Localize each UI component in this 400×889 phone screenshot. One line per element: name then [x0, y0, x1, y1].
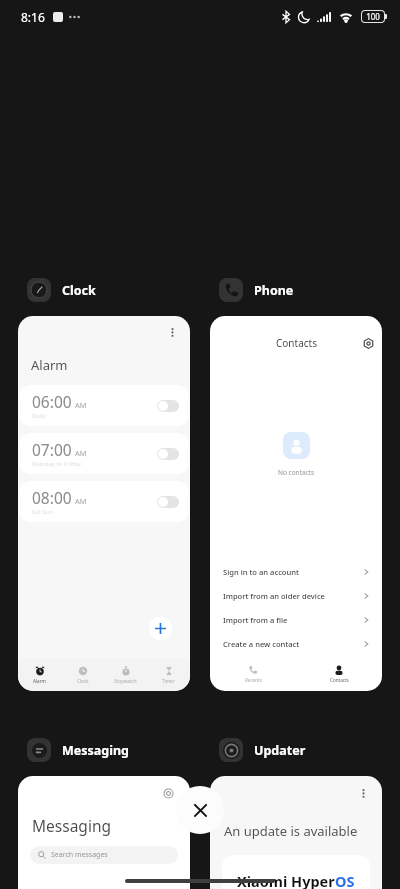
- button[interactable]: Messaging: [27, 738, 129, 762]
- staticText: Create a new contact: [223, 639, 362, 649]
- staticText: Import from a file: [223, 615, 362, 625]
- staticText: AM: [75, 400, 87, 410]
- button[interactable]: An update is available: [210, 776, 382, 889]
- button[interactable]: Toggle alarm: [157, 448, 179, 460]
- staticText: Daily: [32, 412, 46, 420]
- button[interactable]: Alarm: [18, 659, 61, 691]
- button[interactable]: Import from an older device: [210, 584, 382, 608]
- staticText: Messaging: [32, 815, 111, 836]
- staticText: Stopwatch: [114, 678, 137, 684]
- button[interactable]: Updater: [219, 738, 306, 762]
- staticText: Contacts: [330, 677, 349, 683]
- staticText: No contacts: [278, 468, 315, 477]
- staticText: AM: [75, 448, 87, 458]
- button[interactable]: Recents: [210, 657, 296, 691]
- button[interactable]: Messaging: [18, 776, 190, 889]
- staticText: OS: [335, 871, 355, 889]
- button[interactable]: Close all apps: [176, 786, 224, 834]
- staticText: 8:16: [21, 9, 45, 25]
- staticText: Timer: [162, 678, 175, 684]
- button[interactable]: Toggle alarm: [157, 496, 179, 508]
- staticText: Sat Sun: [32, 508, 54, 516]
- staticText: AM: [75, 496, 87, 506]
- button[interactable]: Toggle alarm: [157, 400, 179, 412]
- button[interactable]: Stopwatch: [104, 659, 147, 691]
- staticText: Monday to Friday: [32, 460, 82, 468]
- staticText: Contacts: [276, 336, 317, 350]
- button[interactable]: Contacts: [210, 316, 382, 691]
- button[interactable]: Add alarm: [149, 617, 172, 640]
- staticText: Clock: [77, 678, 89, 684]
- staticText: Phone: [254, 282, 294, 299]
- button[interactable]: 08:00: [19, 481, 189, 522]
- staticText: 100: [366, 11, 380, 22]
- staticText: 06:00: [32, 391, 72, 412]
- staticText: 08:00: [32, 487, 72, 508]
- staticText: Messaging: [62, 742, 129, 759]
- button[interactable]: Settings: [359, 334, 377, 352]
- staticText: Updater: [254, 742, 306, 759]
- button[interactable]: Clock: [27, 278, 96, 302]
- staticText: 07:00: [32, 439, 72, 460]
- button[interactable]: Phone: [219, 278, 294, 302]
- button[interactable]: Clock: [61, 659, 104, 691]
- button[interactable]: 07:00: [19, 433, 189, 474]
- button[interactable]: Sign in to an account: [210, 560, 382, 584]
- button[interactable]: Timer: [147, 659, 190, 691]
- staticText: Clock: [62, 282, 96, 299]
- button[interactable]: Contacts: [296, 657, 382, 691]
- staticText: Import from an older device: [223, 591, 362, 601]
- staticText: Alarm: [33, 678, 46, 684]
- button[interactable]: Search messages: [30, 846, 178, 864]
- button[interactable]: Create a new contact: [210, 632, 382, 656]
- staticText: Sign in to an account: [223, 567, 362, 577]
- staticText: Xiaomi Hyper: [237, 871, 335, 889]
- button[interactable]: Import from a file: [210, 608, 382, 632]
- button[interactable]: Alarm: [18, 316, 190, 691]
- staticText: Recents: [245, 677, 262, 683]
- staticText: Search messages: [51, 850, 108, 860]
- staticText: An update is available: [224, 822, 358, 840]
- button[interactable]: 06:00: [19, 385, 189, 426]
- staticText: Alarm: [31, 356, 68, 374]
